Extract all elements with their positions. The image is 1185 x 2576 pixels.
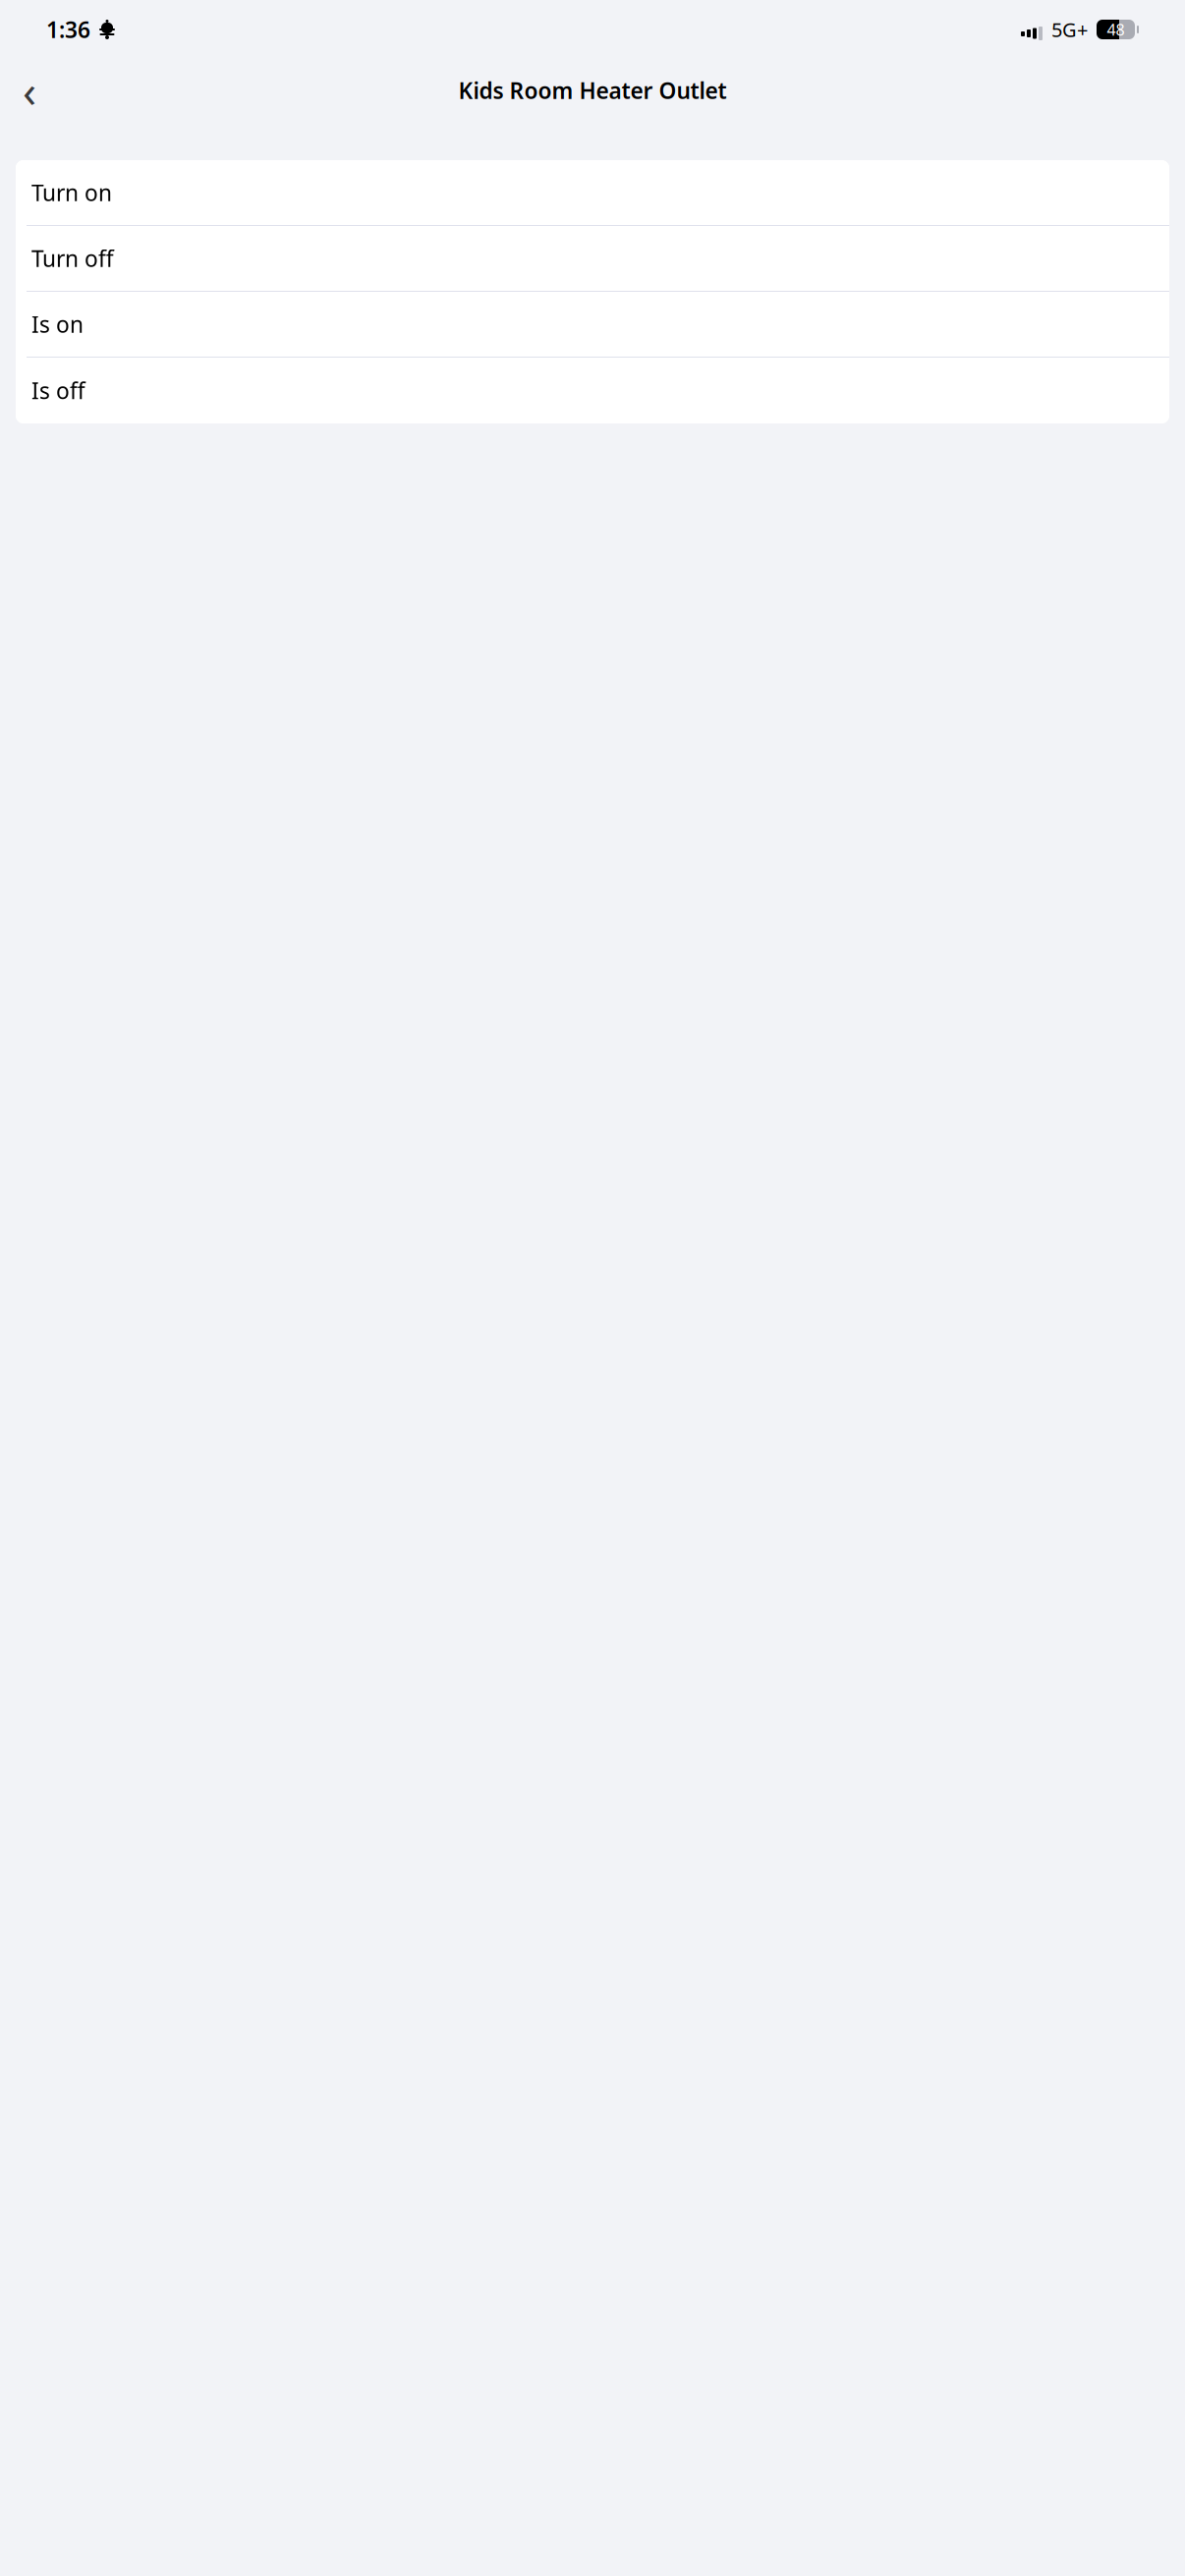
staticText: 48	[1107, 19, 1125, 40]
staticText: Is on	[31, 309, 84, 339]
staticText: ‹	[23, 61, 36, 120]
staticText: 1:36	[46, 15, 90, 44]
staticText: Turn on	[31, 178, 112, 207]
button[interactable]: Is off	[16, 358, 1169, 423]
button[interactable]: Back	[8, 69, 51, 112]
staticText: Turn off	[31, 244, 114, 273]
button[interactable]: Is on	[16, 292, 1169, 358]
button[interactable]: Turn on	[16, 160, 1169, 226]
button[interactable]: Turn off	[16, 226, 1169, 292]
staticText: Is off	[31, 376, 85, 405]
staticText: 5G+	[1051, 16, 1088, 43]
staticText: Kids Room Heater Outlet	[458, 76, 727, 105]
